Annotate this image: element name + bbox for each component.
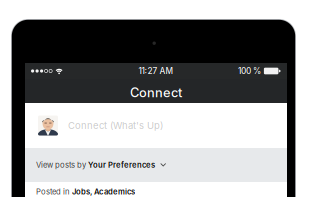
staticText: Posted in — [36, 187, 72, 196]
staticText: 11:27 AM — [138, 66, 173, 76]
staticText: 100 % — [238, 66, 261, 76]
staticText: Connect (What's Up) — [68, 120, 163, 131]
button[interactable]: Connect (What's Up) — [25, 103, 287, 148]
staticText: Jobs, Academics — [72, 187, 135, 196]
staticText: Your Preferences — [88, 160, 155, 170]
staticText: Connect — [130, 85, 182, 100]
staticText: View posts by — [36, 160, 88, 170]
button[interactable]: View posts by — [25, 148, 287, 182]
